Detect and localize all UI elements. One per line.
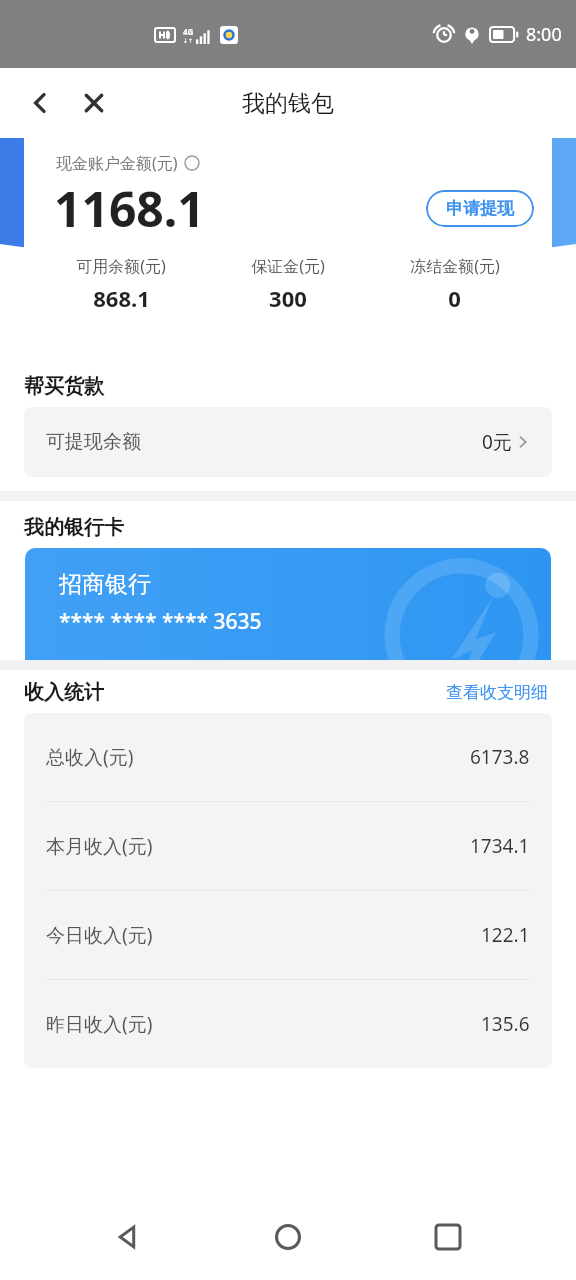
- button[interactable]: 昨日收入(元): [24, 980, 552, 1068]
- staticText: 查看收支明细: [446, 682, 548, 703]
- staticText: 868.1: [93, 283, 150, 313]
- button[interactable]: 今日收入(元): [24, 891, 552, 979]
- button[interactable]: Back: [18, 81, 62, 125]
- staticText: **** **** **** 3635: [59, 607, 262, 636]
- staticText: 1168.1: [54, 176, 205, 241]
- staticText: 1734.1: [470, 833, 530, 859]
- staticText: 申请提现: [446, 198, 514, 219]
- staticText: 现金账户金额(元): [56, 152, 178, 174]
- staticText: 可用余额(元): [76, 255, 166, 277]
- staticText: 今日收入(元): [46, 922, 153, 948]
- staticText: 招商银行: [59, 570, 151, 599]
- staticText: 帮买货款: [24, 374, 104, 399]
- button[interactable]: 招商银行: [25, 548, 551, 660]
- staticText: 本月收入(元): [46, 833, 153, 859]
- staticText: 8:00: [526, 22, 562, 47]
- button[interactable]: Back: [96, 1205, 160, 1269]
- button[interactable]: Home: [256, 1205, 320, 1269]
- button[interactable]: 申请提现: [426, 190, 534, 227]
- staticText: 300: [269, 283, 307, 313]
- staticText: 135.6: [481, 1011, 530, 1037]
- button[interactable]: 总收入(元): [24, 713, 552, 801]
- staticText: 保证金(元): [251, 255, 325, 277]
- staticText: 总收入(元): [46, 744, 134, 770]
- staticText: 昨日收入(元): [46, 1011, 153, 1037]
- button[interactable]: 本月收入(元): [24, 802, 552, 890]
- staticText: 122.1: [481, 922, 530, 948]
- staticText: 0: [448, 283, 461, 313]
- staticText: 我的银行卡: [24, 515, 124, 540]
- staticText: 0元: [482, 429, 512, 455]
- button[interactable]: 可提现余额: [24, 407, 552, 477]
- staticText: ↓↑: [183, 37, 194, 44]
- button[interactable]: Recents: [416, 1205, 480, 1269]
- staticText: 冻结金额(元): [410, 255, 500, 277]
- staticText: 收入统计: [24, 680, 104, 705]
- staticText: 我的钱包: [242, 89, 334, 118]
- button[interactable]: 查看收支明细: [442, 678, 552, 707]
- staticText: 6173.8: [470, 744, 530, 770]
- button[interactable]: Close: [72, 81, 116, 125]
- staticText: 可提现余额: [46, 430, 141, 454]
- staticText: 4G: [183, 26, 194, 37]
